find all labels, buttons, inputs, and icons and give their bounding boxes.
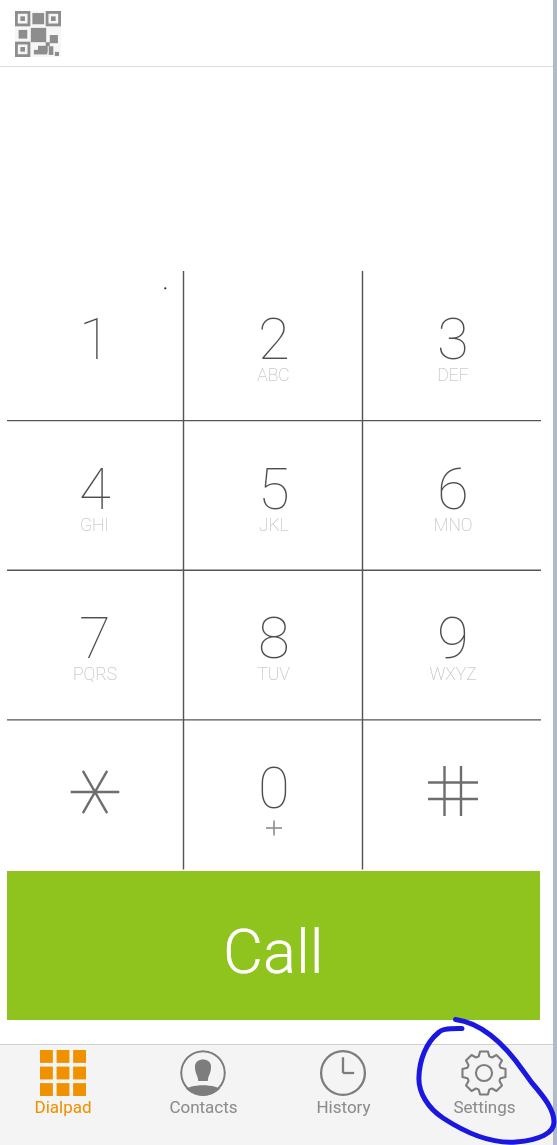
button[interactable]: 1 <box>5 271 184 421</box>
staticText: 4 <box>79 455 111 523</box>
staticText: 9 <box>437 604 469 672</box>
button[interactable]: Settings <box>414 1044 554 1145</box>
button[interactable]: Dialpad <box>0 1044 133 1145</box>
button[interactable] <box>5 720 184 870</box>
button[interactable] <box>363 720 542 870</box>
staticText: 5 <box>258 455 290 523</box>
button[interactable]: 6 <box>363 421 542 571</box>
button[interactable]: 0 <box>184 720 363 870</box>
staticText: PQRS <box>73 664 117 685</box>
staticText: History <box>316 1097 371 1117</box>
staticText: 6 <box>437 455 469 523</box>
staticText: 3 <box>437 305 469 373</box>
staticText: Contacts <box>169 1097 238 1117</box>
staticText: 2 <box>258 305 290 373</box>
staticText: ABC <box>257 365 290 386</box>
staticText: 8 <box>258 604 290 672</box>
button[interactable]: 7 <box>5 570 184 720</box>
button[interactable]: Contacts <box>133 1044 273 1145</box>
staticText: JKL <box>259 515 289 536</box>
button[interactable]: Scan QR code <box>14 10 62 58</box>
button[interactable]: Call <box>7 871 540 1020</box>
staticText: 0 <box>258 754 290 822</box>
staticText: MNO <box>433 515 473 536</box>
staticText: Call <box>223 916 324 988</box>
button[interactable]: 8 <box>184 570 363 720</box>
button[interactable]: History <box>273 1044 413 1145</box>
staticText: GHI <box>80 515 109 536</box>
staticText: 1 <box>79 305 111 373</box>
staticText: Dialpad <box>34 1097 92 1117</box>
staticText: Settings <box>453 1097 516 1117</box>
button[interactable]: 4 <box>5 421 184 571</box>
button[interactable]: 5 <box>184 421 363 571</box>
staticText: 7 <box>79 604 111 672</box>
button[interactable]: 9 <box>363 570 542 720</box>
button[interactable]: 3 <box>363 271 542 421</box>
staticText: TUV <box>257 664 290 685</box>
button[interactable]: 2 <box>184 271 363 421</box>
staticText: WXYZ <box>429 664 477 685</box>
staticText: DEF <box>437 365 469 386</box>
